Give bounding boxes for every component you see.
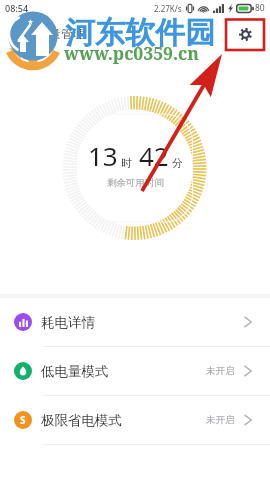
staticText: 42: [139, 138, 169, 173]
staticText: 极限省电模式: [41, 412, 122, 429]
staticText: 13: [88, 138, 118, 173]
staticText: 电量管理: [37, 26, 85, 41]
button[interactable]: Settings: [231, 20, 259, 48]
staticText: 2.27K/s: [154, 3, 182, 14]
staticText: 未开启: [206, 414, 235, 426]
staticText: 河东软件园: [65, 14, 215, 52]
staticText: www.pc0359.cn: [64, 41, 199, 65]
staticText: 剩余可用时间: [107, 177, 164, 189]
button[interactable]: 低电量模式: [0, 347, 270, 395]
staticText: 时: [121, 156, 132, 170]
staticText: 08:54: [5, 2, 29, 14]
staticText: 低电量模式: [41, 363, 109, 380]
staticText: 未开启: [206, 365, 235, 377]
button[interactable]: S: [0, 396, 270, 444]
button[interactable]: 耗电详情: [0, 298, 270, 346]
staticText: S: [20, 413, 26, 427]
staticText: 分: [172, 156, 183, 170]
staticText: 耗电详情: [41, 314, 95, 331]
button[interactable]: Back: [0, 18, 32, 50]
staticText: 80: [255, 2, 265, 14]
